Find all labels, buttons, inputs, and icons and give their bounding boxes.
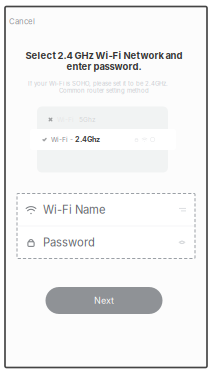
staticText: Wi-Fi - [51,135,73,143]
button[interactable]: Next [45,287,162,314]
staticText: Wi-Fi Name [43,203,106,216]
button[interactable]: Cancel [4,13,40,30]
staticText: Password [43,236,95,249]
staticText: Select 2.4 GHz Wi-Fi Network and [25,50,182,61]
staticText: Common router setting method [59,87,149,94]
staticText: 5Ghz [79,115,96,123]
staticText: If your Wi-Fi is SOHO, please set it to … [28,80,168,87]
button[interactable]: Wi-Fi Name [17,194,195,226]
staticText: 2.4Ghz [75,135,100,144]
staticText: enter password. [66,61,141,72]
button[interactable]: Password [17,226,195,258]
staticText: Next [94,295,114,306]
staticText: Cancel [9,17,35,26]
staticText: Wi-Fi [57,115,74,123]
